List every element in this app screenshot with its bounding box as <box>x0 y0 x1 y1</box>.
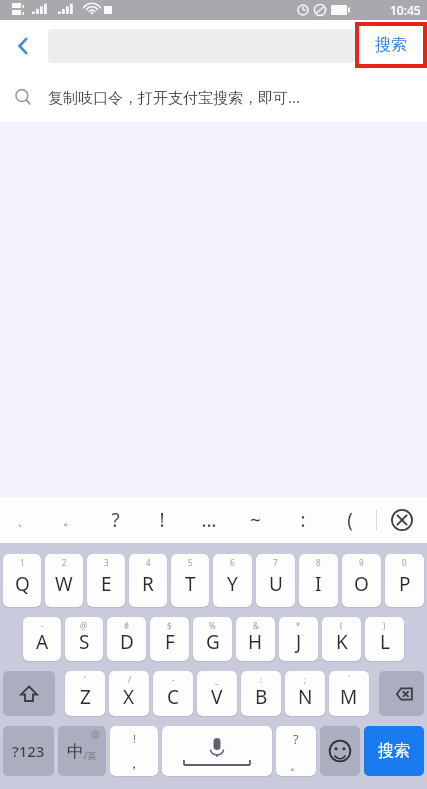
staticText: ` <box>348 674 351 685</box>
staticText: M <box>340 684 358 710</box>
button[interactable]: ! <box>138 497 185 543</box>
staticText: Y <box>227 571 238 597</box>
button[interactable]: 7 <box>256 554 295 607</box>
button[interactable]: 复制吱口令，打开支付宝搜索，即可... <box>0 72 427 122</box>
button[interactable]: ) <box>365 617 404 661</box>
staticText: ( <box>340 620 343 631</box>
staticText: ! <box>133 731 136 746</box>
staticText: R <box>142 571 154 597</box>
button[interactable]: 0 <box>385 554 424 607</box>
staticText: H <box>248 629 263 655</box>
button[interactable]: 9 <box>342 554 381 607</box>
staticText: 。 <box>290 758 302 773</box>
staticText: J <box>296 629 302 655</box>
button[interactable]: _ <box>197 671 237 716</box>
button[interactable]: ( <box>326 497 373 543</box>
button[interactable]: 、 <box>0 497 46 543</box>
button[interactable]: 5 <box>171 554 209 607</box>
button[interactable]: : <box>279 497 326 543</box>
staticText: 4 <box>146 557 151 568</box>
button[interactable]: Back <box>0 23 46 69</box>
button[interactable]: : <box>241 671 281 716</box>
staticText: ' <box>84 674 86 685</box>
staticText: 7 <box>273 557 278 568</box>
staticText: W <box>55 571 73 597</box>
staticText: N <box>298 684 313 710</box>
button[interactable]: 1 <box>3 554 41 607</box>
button[interactable]: - <box>153 671 193 716</box>
staticText: % <box>209 620 216 631</box>
button[interactable]: 2 <box>45 554 83 607</box>
staticText: L <box>380 629 390 655</box>
staticText: & <box>253 620 259 631</box>
button[interactable]: 8 <box>299 554 338 607</box>
staticText: B <box>255 684 268 710</box>
staticText: D <box>120 629 134 655</box>
button[interactable]: 搜索 <box>359 26 423 64</box>
button[interactable]: $ <box>150 617 189 661</box>
button[interactable]: & <box>236 617 275 661</box>
button[interactable]: Backspace <box>379 671 424 716</box>
staticText: ?123 <box>12 741 45 761</box>
button[interactable]: ~ <box>232 497 279 543</box>
staticText: 、 <box>17 512 30 528</box>
button[interactable]: 搜索 <box>364 726 424 776</box>
button[interactable]: Emoji <box>320 726 360 776</box>
staticText: C <box>167 684 180 710</box>
button[interactable]: 4 <box>129 554 167 607</box>
button[interactable]: / <box>109 671 149 716</box>
staticText: : <box>300 507 306 533</box>
button[interactable]: Shift <box>3 671 55 716</box>
staticText: 9 <box>359 557 364 568</box>
button[interactable]: 。 <box>46 497 92 543</box>
button[interactable]: Clear <box>377 497 427 543</box>
button[interactable]: ( <box>322 617 361 661</box>
button[interactable]: ' <box>65 671 105 716</box>
staticText: : <box>260 674 263 685</box>
staticText: 3 <box>104 557 109 568</box>
staticText: O <box>354 571 369 597</box>
staticText: 6 <box>230 557 235 568</box>
staticText: 8 <box>316 557 321 568</box>
button[interactable]: 中 <box>58 726 106 776</box>
staticText: Z <box>80 684 91 710</box>
staticText: Q <box>15 571 30 597</box>
button[interactable]: ! <box>110 726 158 776</box>
button[interactable]: ?123 <box>3 726 54 776</box>
staticText: T <box>185 571 196 597</box>
staticText: ) <box>383 620 386 631</box>
staticText: V <box>211 684 223 710</box>
button[interactable]: # <box>107 617 146 661</box>
staticText: G <box>206 629 220 655</box>
button[interactable]: 6 <box>213 554 252 607</box>
staticText: ( <box>347 507 353 533</box>
button[interactable]: ? <box>92 497 138 543</box>
button[interactable]: 3 <box>87 554 125 607</box>
staticText: ? <box>111 507 120 533</box>
button[interactable]: @ <box>65 617 103 661</box>
staticText: - <box>41 620 44 631</box>
staticText: E <box>101 571 112 597</box>
button[interactable]: % <box>193 617 232 661</box>
staticText: S <box>79 629 90 655</box>
staticText: ? <box>293 730 299 748</box>
button[interactable]: ; <box>285 671 325 716</box>
staticText: 2 <box>62 557 67 568</box>
staticText: 中 <box>67 741 84 762</box>
staticText: ， <box>127 755 141 773</box>
button[interactable]: ` <box>329 671 369 716</box>
staticText: I <box>315 571 322 597</box>
staticText: F <box>165 629 175 655</box>
button[interactable]: … <box>185 497 232 543</box>
staticText: K <box>336 629 348 655</box>
button[interactable]: Space <box>162 726 272 776</box>
staticText: ~ <box>250 507 261 533</box>
button[interactable]: * <box>279 617 318 661</box>
staticText: / <box>128 674 131 685</box>
button[interactable]: ? <box>276 726 316 776</box>
staticText: 搜索 <box>375 35 407 55</box>
button[interactable]: - <box>23 617 61 661</box>
staticText: ! <box>159 507 165 533</box>
staticText: $ <box>167 620 172 631</box>
